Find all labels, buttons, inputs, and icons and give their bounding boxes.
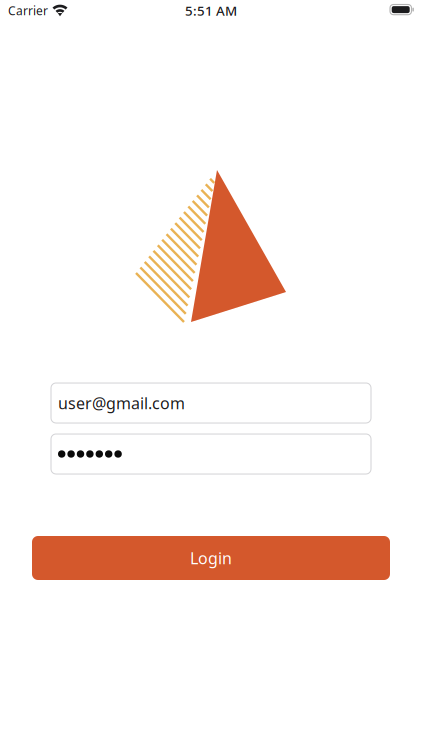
staticText: 5:51 AM [185, 2, 237, 19]
button[interactable]: Email address [51, 383, 371, 423]
button[interactable]: Password [51, 434, 371, 474]
staticText: Login [190, 547, 232, 569]
button[interactable]: Login [32, 536, 390, 580]
staticText: Carrier [8, 2, 48, 18]
staticText: user@gmail.com [58, 392, 185, 414]
